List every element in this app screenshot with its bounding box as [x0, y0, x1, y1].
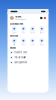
- staticText: Welcome back: [15, 18, 26, 20]
- staticText: Pay: [22, 32, 25, 34]
- staticText: Recent: [10, 47, 16, 49]
- button[interactable]: Data: [20, 38, 27, 46]
- button[interactable]: More: [38, 26, 45, 34]
- staticText: Alex M.: [15, 16, 22, 18]
- staticText: Save: [40, 44, 44, 46]
- button[interactable]: Save: [38, 38, 45, 46]
- staticText: Top up wallet: [14, 56, 26, 59]
- button[interactable]: Loan: [29, 38, 36, 46]
- button[interactable]: Transfer sent: [10, 50, 46, 55]
- staticText: Loan: [31, 44, 35, 46]
- button[interactable]: Bills: [10, 38, 18, 46]
- staticText: Send: [12, 32, 16, 34]
- button[interactable]: Scan code: [40, 17, 42, 19]
- button[interactable]: Cards: [29, 26, 36, 34]
- button[interactable]: Card payment: [10, 60, 46, 65]
- staticText: Bills: [13, 44, 15, 46]
- button[interactable]: Notifications: [44, 17, 46, 19]
- button[interactable]: Send: [10, 26, 18, 34]
- staticText: Quick actions: [10, 23, 23, 25]
- button[interactable]: Top up wallet: [10, 55, 46, 60]
- button[interactable]: Pay: [20, 26, 27, 34]
- staticText: Cards: [30, 32, 35, 34]
- staticText: Transfer sent: [14, 51, 27, 54]
- staticText: Services: [10, 35, 18, 37]
- staticText: Data: [21, 44, 25, 46]
- staticText: More: [40, 32, 44, 34]
- staticText: Card payment: [14, 61, 27, 64]
